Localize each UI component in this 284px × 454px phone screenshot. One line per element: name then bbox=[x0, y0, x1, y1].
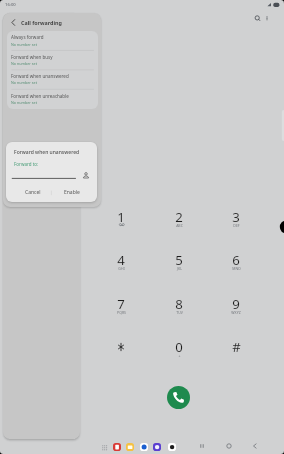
button[interactable]: Back bbox=[249, 440, 261, 452]
staticText: Forward to: bbox=[14, 161, 39, 167]
button[interactable] bbox=[210, 243, 262, 281]
button[interactable]: Cancel bbox=[23, 187, 43, 198]
button[interactable]: Samsung Notes bbox=[113, 443, 121, 451]
button[interactable] bbox=[210, 287, 262, 325]
staticText: Enable bbox=[64, 189, 80, 196]
staticText: ABC bbox=[176, 223, 183, 228]
button[interactable]: More options bbox=[263, 14, 271, 22]
staticText: Always forward bbox=[11, 34, 44, 40]
staticText: Call forwarding bbox=[21, 19, 62, 26]
staticText: + bbox=[178, 353, 181, 358]
staticText: PQRS bbox=[117, 310, 126, 315]
staticText: GHI bbox=[118, 266, 125, 271]
staticText: 1 bbox=[117, 208, 125, 226]
staticText: Forward when unanswered bbox=[14, 149, 80, 156]
staticText: JKL bbox=[177, 266, 182, 271]
staticText: 16:00 bbox=[5, 2, 16, 8]
button[interactable] bbox=[210, 200, 262, 238]
button[interactable]: Camera bbox=[168, 443, 176, 451]
staticText: No number set bbox=[11, 100, 38, 105]
button[interactable] bbox=[7, 70, 98, 89]
staticText: 6 bbox=[232, 251, 240, 269]
button[interactable] bbox=[95, 330, 147, 368]
button[interactable] bbox=[7, 89, 98, 108]
staticText: MNO bbox=[232, 266, 241, 271]
button[interactable]: Enable bbox=[62, 187, 82, 198]
staticText: Cancel bbox=[25, 189, 41, 196]
staticText: WXYZ bbox=[231, 310, 241, 315]
staticText: 7 bbox=[117, 295, 125, 313]
staticText: DEF bbox=[233, 223, 240, 228]
button[interactable]: Internet bbox=[140, 443, 148, 451]
button[interactable] bbox=[153, 200, 205, 238]
staticText: 2 bbox=[175, 208, 183, 226]
staticText: 3 bbox=[232, 208, 240, 226]
button[interactable]: Files bbox=[126, 443, 134, 451]
staticText: Forward when unreachable bbox=[11, 93, 69, 99]
staticText: TUV bbox=[176, 310, 183, 315]
button[interactable]: Choose contact bbox=[83, 172, 89, 178]
button[interactable] bbox=[95, 287, 147, 325]
staticText: 0 bbox=[175, 338, 183, 356]
staticText: No number set bbox=[11, 61, 38, 66]
button[interactable]: Search bbox=[253, 14, 262, 23]
button[interactable] bbox=[210, 330, 262, 368]
button[interactable] bbox=[95, 243, 147, 281]
button[interactable] bbox=[153, 330, 205, 368]
button[interactable]: Gallery bbox=[153, 443, 161, 451]
staticText: 9 bbox=[232, 295, 240, 313]
staticText: Forward when unanswered bbox=[11, 73, 69, 79]
button[interactable] bbox=[153, 243, 205, 281]
staticText: No number set bbox=[11, 80, 38, 85]
staticText: 8 bbox=[175, 295, 183, 313]
staticText: 5 bbox=[175, 251, 183, 269]
button[interactable]: Apps bbox=[102, 445, 108, 451]
button[interactable]: Home bbox=[223, 440, 235, 452]
button[interactable]: Back bbox=[9, 18, 18, 27]
button[interactable]: Call bbox=[167, 386, 190, 409]
staticText: Forward when busy bbox=[11, 54, 53, 60]
staticText: 4 bbox=[117, 251, 125, 269]
staticText: No number set bbox=[11, 42, 38, 47]
staticText: # bbox=[232, 338, 241, 356]
button[interactable]: Recents bbox=[196, 440, 208, 452]
button[interactable] bbox=[7, 50, 98, 69]
button[interactable] bbox=[153, 287, 205, 325]
button[interactable] bbox=[7, 31, 98, 50]
button[interactable] bbox=[95, 200, 147, 238]
